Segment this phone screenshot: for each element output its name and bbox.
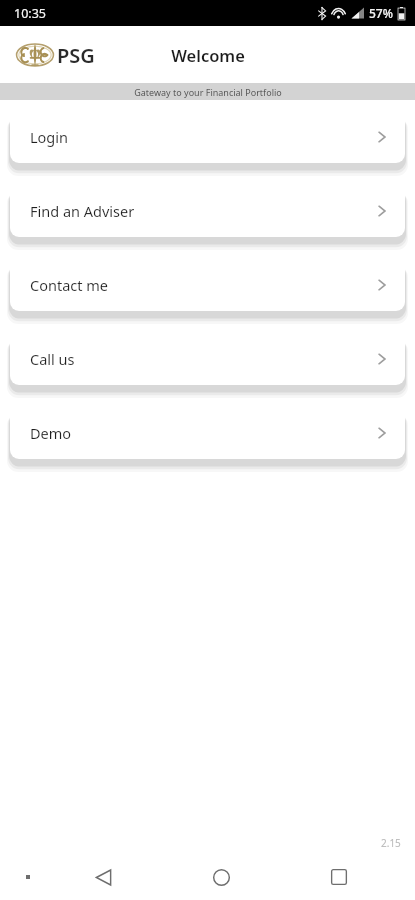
- staticText: Gateway to your Financial Portfolio: [134, 86, 282, 98]
- button[interactable]: Call us: [10, 333, 405, 385]
- staticText: Demo: [30, 423, 377, 443]
- button[interactable]: Demo: [10, 407, 405, 459]
- staticText: 2.15: [381, 836, 401, 850]
- button[interactable]: Keyboard switcher: [20, 869, 36, 885]
- staticText: Welcome: [171, 44, 245, 66]
- staticText: 10:35: [14, 5, 46, 22]
- staticText: Call us: [30, 349, 377, 369]
- button[interactable]: PSG home: [14, 39, 97, 71]
- button[interactable]: Find an Adviser: [10, 185, 405, 237]
- button[interactable]: Back: [85, 859, 122, 896]
- staticText: 57%: [369, 5, 393, 21]
- staticText: PSG: [57, 42, 95, 69]
- button[interactable]: Recents: [321, 859, 357, 895]
- button[interactable]: Home: [203, 859, 240, 896]
- staticText: Login: [30, 127, 377, 147]
- button[interactable]: Login: [10, 111, 405, 163]
- staticText: Contact me: [30, 275, 377, 295]
- button[interactable]: Contact me: [10, 259, 405, 311]
- staticText: Find an Adviser: [30, 201, 377, 221]
